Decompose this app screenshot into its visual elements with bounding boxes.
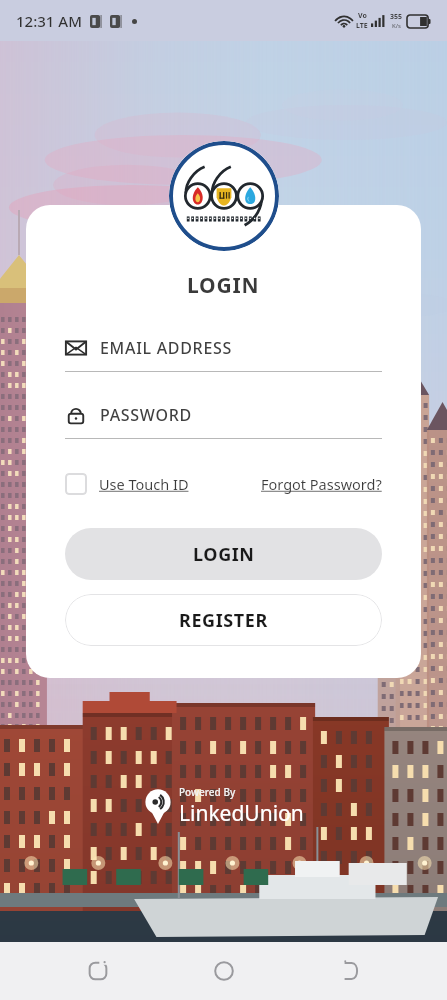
button[interactable]: Forgot Password? <box>261 474 382 494</box>
button[interactable]: LOGIN <box>65 528 382 580</box>
staticText: Forgot Password? <box>261 474 382 494</box>
other: Local 669 Sprinklerfitters logo <box>169 141 279 251</box>
staticText: Use Touch ID <box>99 474 189 494</box>
staticText: LOGIN <box>187 271 260 300</box>
button[interactable]: REGISTER <box>65 594 382 646</box>
staticText: LinkedUnion <box>179 799 304 828</box>
staticText: LTE <box>356 21 368 31</box>
button[interactable]: Use Touch ID <box>65 473 189 495</box>
button[interactable]: PASSWORD <box>65 404 382 439</box>
button[interactable]: Powered by LinkedUnion <box>143 785 304 828</box>
staticText: Vo <box>358 11 367 21</box>
button[interactable]: Home <box>196 943 252 999</box>
button[interactable]: EMAIL ADDRESS <box>65 337 382 372</box>
button[interactable]: Back <box>321 943 377 999</box>
staticText: 355 <box>390 12 403 22</box>
staticText: LOGIN <box>193 542 255 567</box>
staticText: 12:31 AM <box>16 11 82 31</box>
staticText: EMAIL ADDRESS <box>100 337 233 359</box>
button[interactable]: Recent apps <box>70 943 126 999</box>
staticText: PASSWORD <box>100 404 192 426</box>
staticText: REGISTER <box>179 608 268 633</box>
staticText: K/s <box>392 22 401 30</box>
staticText: Powered By <box>179 785 236 799</box>
